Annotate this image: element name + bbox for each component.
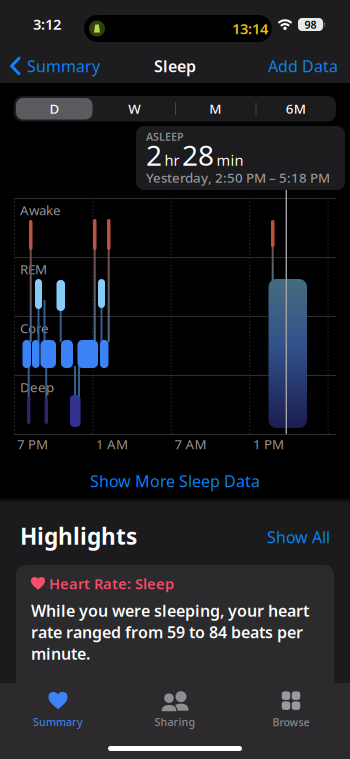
button[interactable]: Summary (13, 688, 103, 732)
staticText: Show More Sleep Data (90, 470, 260, 492)
staticText: REM (20, 260, 47, 278)
button[interactable]: Heart Rate: Sleep (16, 565, 334, 700)
staticText: minute. (31, 643, 90, 664)
button[interactable]: W (95, 96, 175, 121)
staticText: rate ranged from 59 to 84 beats per (31, 621, 303, 643)
button[interactable]: D (14, 96, 94, 121)
staticText: Yesterday, 2:50 PM – 5:18 PM (146, 169, 330, 186)
staticText: Highlights (20, 521, 137, 551)
staticText: 3:12 (33, 14, 61, 34)
staticText: 7 AM (174, 435, 206, 453)
staticText: Sharing (154, 715, 195, 729)
button[interactable]: 6M (256, 96, 336, 121)
staticText: Heart Rate: Sleep (49, 574, 174, 593)
button[interactable]: Add Data (238, 46, 338, 86)
staticText: While you were sleeping, your heart (31, 600, 309, 621)
staticText: hr (164, 150, 179, 170)
staticText: 2 (146, 136, 162, 174)
staticText: W (128, 100, 141, 117)
button[interactable]: Show All (230, 522, 330, 552)
staticText: 98 (304, 17, 316, 32)
staticText: Add Data (268, 55, 338, 77)
staticText: M (209, 100, 221, 117)
staticText: Summary (27, 55, 100, 77)
staticText: Deep (20, 378, 54, 396)
staticText: min (216, 150, 243, 170)
staticText: D (49, 100, 59, 117)
button[interactable]: Browse (246, 688, 336, 732)
staticText: Awake (20, 201, 61, 219)
button[interactable]: Sharing (130, 688, 220, 732)
staticText: Browse (272, 715, 309, 729)
staticText: Show All (267, 526, 330, 548)
button[interactable]: Show More Sleep Data (50, 465, 300, 497)
staticText: 6M (286, 100, 306, 117)
staticText: 1 AM (96, 435, 128, 453)
staticText: Sleep (154, 55, 196, 77)
button[interactable]: Back to Summary (10, 46, 120, 86)
staticText: ASLEEP (146, 129, 184, 144)
staticText: Summary (33, 715, 83, 729)
staticText: Core (20, 319, 49, 337)
staticText: 1 PM (253, 435, 284, 453)
staticText: 13:14 (232, 19, 268, 38)
staticText: 28 (182, 136, 214, 174)
staticText: 7 PM (17, 435, 48, 453)
button[interactable]: M (175, 96, 255, 121)
